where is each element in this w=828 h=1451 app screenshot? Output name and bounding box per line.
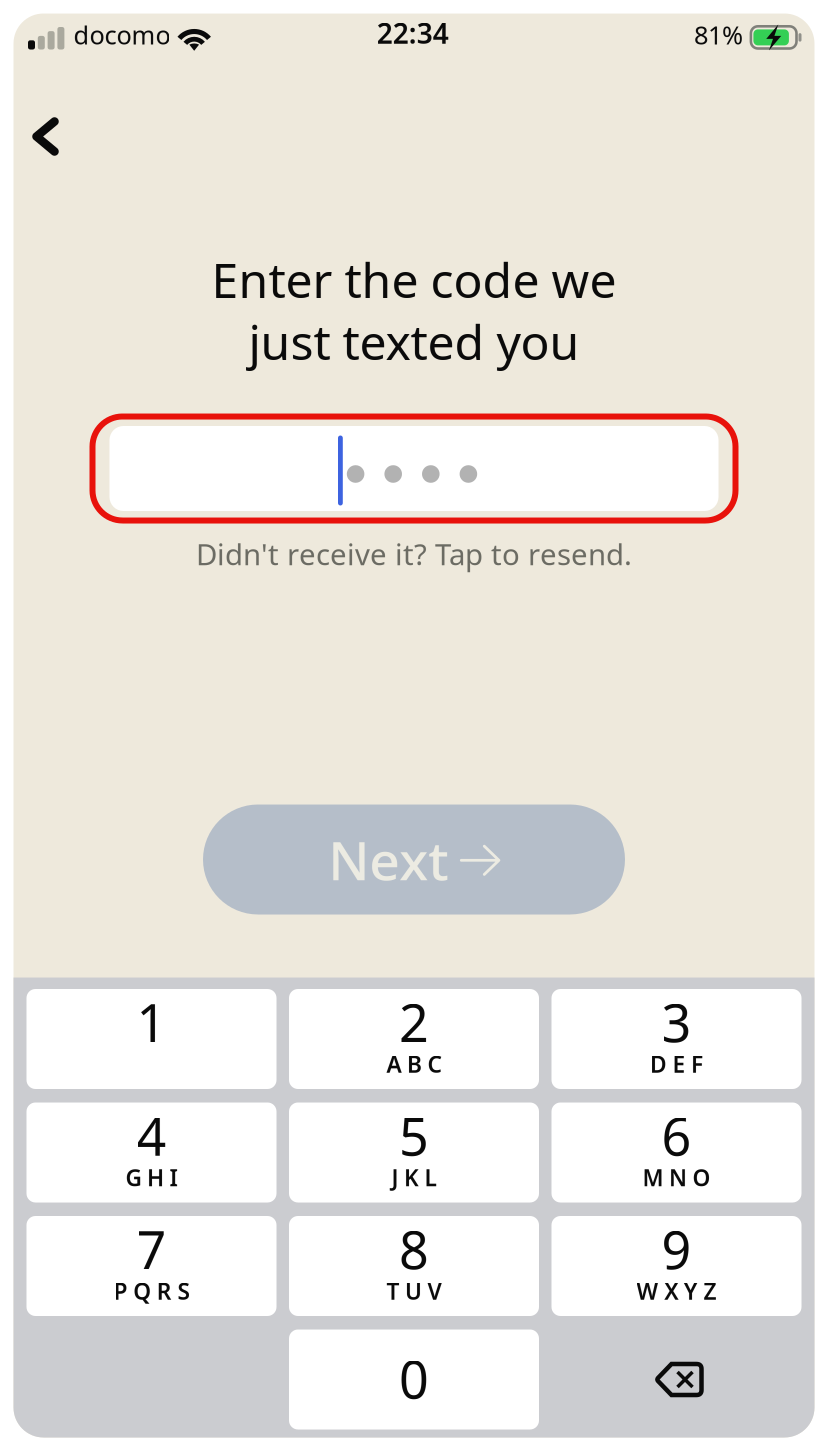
button[interactable]: 5: [289, 1102, 539, 1202]
button[interactable]: Next: [203, 804, 625, 914]
button[interactable]: 1: [26, 989, 276, 1089]
staticText: Next: [328, 824, 448, 895]
button[interactable]: Delete: [551, 1329, 801, 1429]
button[interactable]: 4: [26, 1102, 276, 1202]
staticText: 22:34: [377, 14, 449, 51]
button[interactable]: 7: [26, 1216, 276, 1316]
button[interactable]: 3: [551, 989, 801, 1089]
staticText: 0: [399, 1344, 429, 1413]
staticText: PQRS: [114, 1276, 189, 1306]
staticText: WXYZ: [637, 1276, 716, 1306]
staticText: GHI: [125, 1162, 178, 1192]
staticText: docomo: [73, 18, 170, 51]
staticText: 81%: [694, 18, 743, 51]
button[interactable]: 9: [551, 1216, 801, 1316]
button[interactable]: Didn't receive it? Tap to resend.: [176, 523, 652, 579]
button[interactable]: [89, 413, 738, 523]
staticText: just texted you: [248, 310, 579, 373]
staticText: 4: [136, 1101, 166, 1170]
staticText: JKL: [391, 1162, 437, 1192]
button[interactable]: 0: [289, 1329, 539, 1429]
staticText: ABC: [386, 1049, 442, 1079]
staticText: Didn't receive it? Tap to resend.: [196, 534, 632, 573]
button[interactable]: 8: [289, 1216, 539, 1316]
staticText: 2: [399, 987, 429, 1057]
staticText: 6: [661, 1101, 691, 1170]
staticText: 9: [661, 1214, 691, 1284]
staticText: DEF: [650, 1049, 703, 1079]
staticText: TUV: [386, 1276, 442, 1306]
staticText: 5: [399, 1101, 429, 1170]
staticText: Enter the code we: [211, 248, 616, 311]
button[interactable]: 2: [289, 989, 539, 1089]
staticText: 1: [136, 987, 166, 1057]
staticText: 7: [136, 1214, 166, 1284]
staticText: 3: [661, 987, 691, 1057]
button[interactable]: 6: [551, 1102, 801, 1202]
button[interactable]: Back: [19, 105, 71, 167]
staticText: 8: [399, 1214, 429, 1284]
staticText: MNO: [642, 1162, 711, 1192]
